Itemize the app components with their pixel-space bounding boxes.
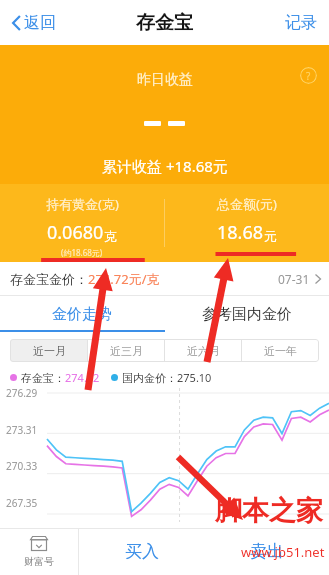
staticText: 273.31	[6, 423, 38, 437]
staticText: 近一年	[264, 344, 297, 358]
staticText: 274.72	[65, 370, 100, 385]
staticText: ?	[306, 69, 311, 83]
staticText: 276.29	[6, 386, 38, 400]
button[interactable]: 持有黄金(克)	[0, 184, 164, 262]
button[interactable]: 近六月	[165, 339, 242, 362]
staticText: 克	[104, 228, 117, 244]
staticText: 元	[264, 228, 277, 244]
staticText: 0.0680	[47, 220, 104, 245]
staticText: 存金宝金价：	[10, 271, 88, 287]
staticText: www.jb51.net	[241, 543, 325, 561]
staticText: 近一月	[33, 344, 66, 358]
staticText: 持有黄金(克)	[46, 195, 119, 213]
staticText: 累计收益 +18.68元	[102, 156, 228, 176]
staticText: 存金宝	[136, 11, 193, 35]
staticText: 275.10	[177, 370, 212, 385]
button[interactable]: 总金额(元)	[165, 184, 329, 262]
button[interactable]: 记录	[280, 8, 322, 38]
staticText: 财富号	[24, 555, 54, 568]
staticText: (约18.68元)	[61, 247, 103, 258]
staticText: 参考国内金价	[202, 305, 292, 324]
staticText: 返回	[24, 13, 56, 33]
button[interactable]: 存金宝金价：	[0, 262, 329, 296]
staticText: 昨日收益	[137, 71, 193, 89]
staticText: 买入	[125, 541, 159, 562]
staticText: 总金额(元)	[217, 195, 277, 213]
button[interactable]: 卖出	[204, 528, 329, 575]
button[interactable]: 财富号	[0, 528, 78, 575]
button[interactable]: 帮助说明	[300, 67, 317, 84]
staticText: 近六月	[187, 344, 220, 358]
staticText: 07-31	[278, 271, 310, 287]
button[interactable]: 返回	[7, 8, 61, 38]
staticText: 274.72元/克	[88, 270, 160, 288]
button[interactable]: 买入	[79, 528, 204, 575]
staticText: 存金宝：	[21, 371, 65, 385]
staticText: 金价走势	[52, 305, 112, 324]
staticText: 近三月	[110, 344, 143, 358]
staticText: 国内金价：	[122, 371, 177, 385]
button[interactable]: 近一月	[10, 339, 88, 362]
button[interactable]: 近一年	[242, 339, 319, 362]
button[interactable]: 参考国内金价	[164, 296, 329, 332]
staticText: 卖出	[250, 541, 284, 562]
staticText: 18.68	[217, 220, 264, 245]
staticText: 记录	[285, 13, 317, 33]
staticText: 267.35	[6, 496, 38, 510]
button[interactable]: 近三月	[88, 339, 165, 362]
staticText: 脚本之家	[215, 494, 323, 528]
staticText: 270.33	[6, 459, 38, 473]
button[interactable]: 金价走势	[0, 296, 164, 332]
